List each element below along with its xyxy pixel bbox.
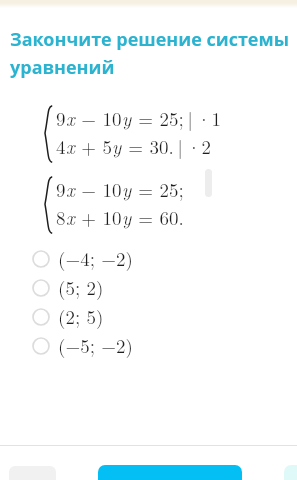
staticText: x [66, 176, 75, 203]
staticText: = 30. | ·2 [122, 133, 211, 160]
staticText: (−4; −2) [58, 245, 133, 272]
staticText: = 60. [132, 204, 184, 231]
staticText: Закончите решение системы уравнений [10, 27, 295, 79]
staticText: − 10 [75, 105, 122, 132]
staticText: (−5; −2) [58, 332, 133, 359]
staticText: = 25; [132, 176, 184, 203]
staticText: 4 [56, 133, 66, 160]
button[interactable]: (−4; −2) [0, 244, 297, 273]
button[interactable]: (−5; −2) [0, 331, 297, 360]
staticText: y [122, 176, 132, 203]
button[interactable]: (5; 2) [0, 273, 297, 302]
staticText: = 25; | ·1 [132, 105, 221, 132]
staticText: y [122, 105, 132, 132]
staticText: x [66, 133, 75, 160]
staticText: + 5 [75, 133, 112, 160]
staticText: + 10 [75, 204, 122, 231]
staticText: 9 [56, 176, 66, 203]
staticText: y [112, 133, 122, 160]
staticText: 9 [56, 105, 66, 132]
staticText: 8 [56, 204, 66, 231]
button[interactable]: More [284, 465, 297, 480]
button[interactable]: (2; 5) [0, 302, 297, 331]
staticText: y [122, 204, 132, 231]
staticText: x [66, 105, 75, 132]
staticText: x [66, 204, 75, 231]
staticText: (2; 5) [58, 303, 104, 330]
staticText: (5; 2) [58, 274, 104, 301]
button[interactable]: Submit answer [98, 465, 242, 480]
staticText: − 10 [75, 176, 122, 203]
